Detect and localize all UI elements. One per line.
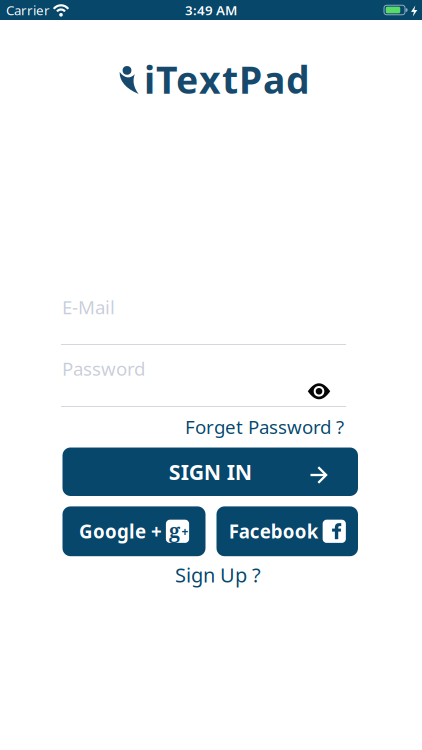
button[interactable]: Show password xyxy=(307,383,331,399)
button[interactable]: Forget Password ? xyxy=(94,414,344,439)
staticText: Carrier xyxy=(6,1,50,19)
staticText: + xyxy=(181,523,188,539)
staticText: iTextPad xyxy=(144,54,310,104)
staticText: SIGN IN xyxy=(169,458,252,486)
staticText: 3:49 AM xyxy=(185,1,237,19)
button[interactable]: Sign Up ? xyxy=(175,561,261,588)
staticText: g xyxy=(169,517,180,544)
staticText: Sign Up ? xyxy=(175,561,261,588)
staticText: Google + xyxy=(79,519,162,544)
staticText: Facebook xyxy=(229,519,319,544)
staticText: Forget Password ? xyxy=(185,414,344,439)
staticText: Password xyxy=(62,356,145,381)
button[interactable]: Google + xyxy=(62,506,205,556)
button[interactable]: Facebook xyxy=(216,506,358,556)
button[interactable]: SIGN IN xyxy=(62,447,358,496)
staticText: E-Mail xyxy=(62,295,115,319)
